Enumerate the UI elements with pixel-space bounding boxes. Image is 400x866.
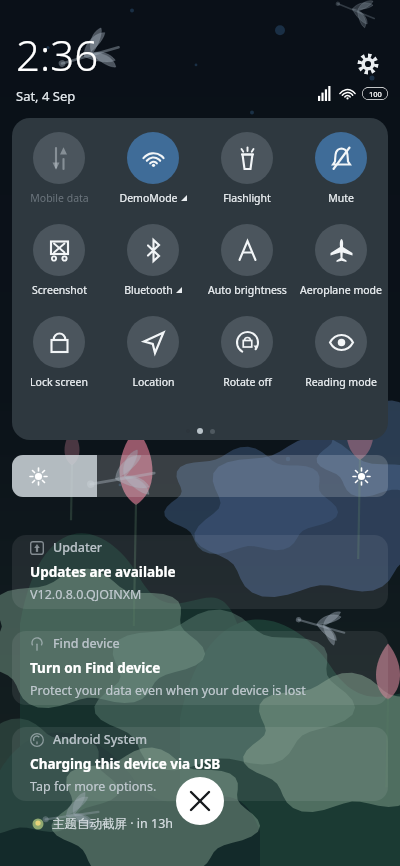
button[interactable]: Reading mode xyxy=(294,316,388,389)
button[interactable]: Bluetooth xyxy=(106,224,200,297)
staticText: 100 xyxy=(369,89,382,99)
button[interactable]: 主题自动截屏 · in 13h xyxy=(12,815,174,832)
button[interactable]: Find device xyxy=(12,631,388,705)
staticText: Turn on Find device xyxy=(30,659,161,677)
button[interactable]: Mute xyxy=(294,132,388,205)
staticText: DemoMode xyxy=(119,191,178,205)
staticText: Protect your data even when your device … xyxy=(30,682,306,699)
button[interactable]: Updater xyxy=(12,535,388,609)
button[interactable]: Screenshot xyxy=(12,224,106,297)
staticText: Screenshot xyxy=(32,283,87,297)
staticText: Reading mode xyxy=(305,375,377,389)
staticText: Bluetooth xyxy=(124,283,173,297)
staticText: Mute xyxy=(328,191,354,205)
staticText: Location xyxy=(132,375,175,389)
button[interactable]: DemoMode xyxy=(106,132,200,205)
staticText: Find device xyxy=(53,635,120,652)
staticText: 2:36 xyxy=(16,26,99,83)
button[interactable]: Lock screen xyxy=(12,316,106,389)
staticText: Auto brightness xyxy=(208,283,287,297)
button[interactable]: Location xyxy=(106,316,200,389)
button[interactable]: Settings xyxy=(350,46,386,82)
button[interactable]: Mobile data xyxy=(12,132,106,205)
staticText: Lock screen xyxy=(30,375,88,389)
button[interactable]: Aeroplane mode xyxy=(294,224,388,297)
staticText: Updater xyxy=(53,539,103,556)
button[interactable]: Brightness xyxy=(12,455,388,497)
staticText: Sat, 4 Sep xyxy=(16,87,76,105)
button[interactable]: Flashlight xyxy=(200,132,294,205)
button[interactable]: Rotate off xyxy=(200,316,294,389)
button[interactable]: Android System xyxy=(12,727,388,801)
staticText: Aeroplane mode xyxy=(300,283,382,297)
button[interactable]: Close xyxy=(176,777,224,825)
staticText: Android System xyxy=(53,731,148,748)
staticText: V12.0.8.0.QJOINXM xyxy=(30,586,142,603)
button[interactable]: Auto brightness xyxy=(200,224,294,297)
staticText: Rotate off xyxy=(223,375,272,389)
staticText: Flashlight xyxy=(223,191,271,205)
staticText: Tap for more options. xyxy=(30,778,157,795)
staticText: 主题自动截屏 · in 13h xyxy=(52,815,174,832)
staticText: Charging this device via USB xyxy=(30,755,221,773)
staticText: Updates are available xyxy=(30,563,176,581)
staticText: Mobile data xyxy=(30,191,89,205)
